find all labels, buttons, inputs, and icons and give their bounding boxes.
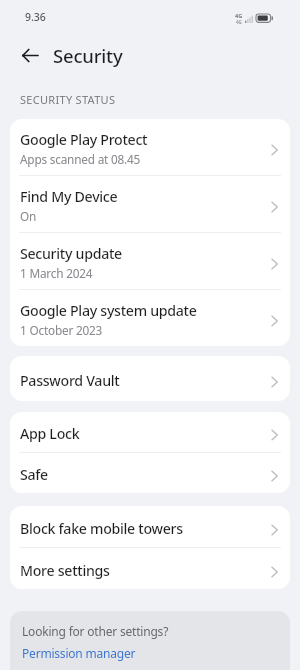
button[interactable]: Safe: [10, 453, 290, 493]
button[interactable]: Block fake mobile towers: [10, 506, 290, 547]
staticText: Looking for other settings?: [22, 623, 169, 639]
staticText: Password Vault: [20, 371, 269, 390]
staticText: Security: [53, 43, 123, 68]
button[interactable]: Security update: [10, 233, 290, 289]
button[interactable]: Google Play system update: [10, 290, 290, 346]
staticText: App Lock: [20, 424, 269, 443]
staticText: SECURITY STATUS: [20, 92, 116, 107]
staticText: 4G: [235, 12, 243, 19]
staticText: Google Play system update: [20, 301, 197, 320]
button[interactable]: Find My Device: [10, 176, 290, 232]
staticText: Find My Device: [20, 187, 118, 206]
staticText: Security update: [20, 244, 122, 263]
button[interactable]: More settings: [10, 548, 290, 589]
button[interactable]: Permission manager: [22, 645, 136, 661]
staticText: Safe: [20, 465, 269, 484]
staticText: More settings: [20, 561, 269, 580]
staticText: 1 October 2023: [20, 322, 103, 338]
staticText: Block fake mobile towers: [20, 519, 269, 538]
staticText: 9.36: [25, 10, 46, 24]
staticText: Apps scanned at 08.45: [20, 151, 141, 167]
staticText: 4G: [236, 19, 242, 25]
button[interactable]: Google Play Protect: [10, 119, 290, 175]
button[interactable]: Password Vault: [10, 356, 290, 401]
staticText: 1 March 2024: [20, 265, 93, 281]
button[interactable]: App Lock: [10, 412, 290, 452]
staticText: Google Play Protect: [20, 130, 148, 149]
staticText: On: [20, 208, 37, 224]
button[interactable]: [22, 41, 50, 69]
